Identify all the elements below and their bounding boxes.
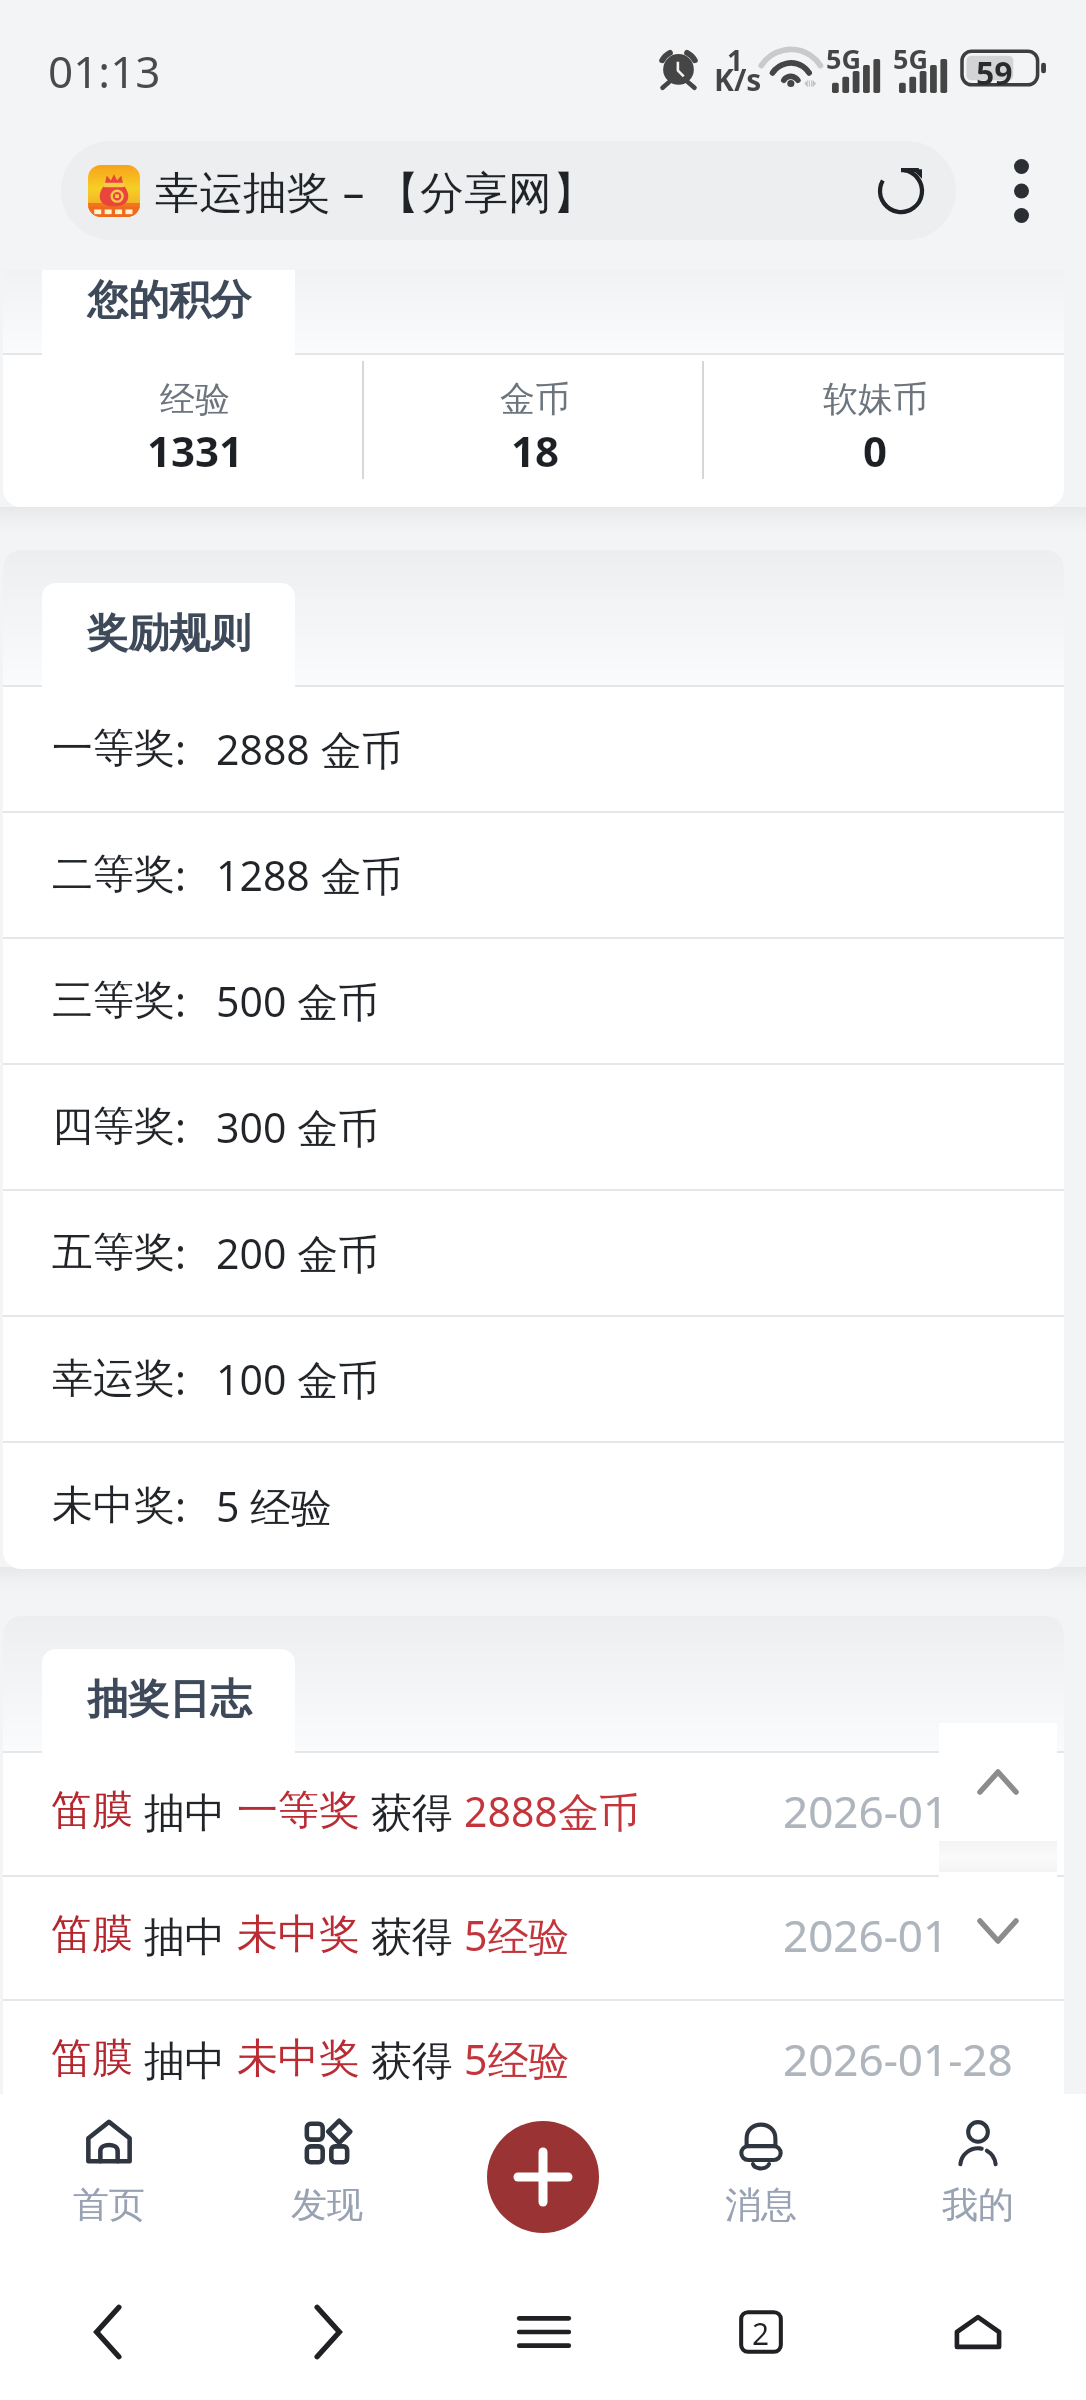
- staticText: 1288 金币: [216, 847, 403, 903]
- staticText: 获得: [360, 1907, 464, 1963]
- button[interactable]: Scroll down: [939, 1872, 1057, 1990]
- staticText: :: [175, 1478, 186, 1534]
- staticText: 一等奖: [237, 1785, 360, 1837]
- staticText: 我的: [942, 2182, 1014, 2227]
- staticText: 5 经验: [216, 1478, 333, 1534]
- staticText: 奖励规则: [87, 608, 251, 660]
- staticText: 59: [976, 51, 1013, 95]
- staticText: 5经验: [464, 2031, 570, 2087]
- staticText: 四等奖: [52, 1101, 175, 1153]
- staticText: 三等奖: [52, 975, 175, 1027]
- button[interactable]: Reload: [851, 141, 950, 240]
- button[interactable]: Home: [869, 2264, 1086, 2400]
- staticText: 一等奖: [52, 723, 175, 775]
- staticText: 幸运奖: [52, 1353, 175, 1405]
- staticText: 2888 金币: [216, 721, 403, 777]
- staticText: 未中奖: [237, 2033, 360, 2085]
- staticText: 获得: [360, 2031, 464, 2087]
- staticText: 软妹币: [823, 377, 928, 421]
- button[interactable]: 笛膜: [3, 1877, 1064, 1999]
- staticText: 5G: [826, 40, 861, 77]
- staticText: 2026-01-28: [783, 2029, 1013, 2089]
- staticText: 500 金币: [216, 973, 380, 1029]
- button[interactable]: 四等奖: [3, 1065, 1064, 1189]
- button[interactable]: 首页: [0, 2094, 218, 2264]
- button[interactable]: 未中奖: [3, 1443, 1064, 1569]
- staticText: 5经验: [464, 1907, 570, 1963]
- button[interactable]: 一等奖: [3, 687, 1064, 811]
- staticText: 300 金币: [216, 1099, 380, 1155]
- staticText: 1: [727, 41, 744, 79]
- button[interactable]: 经验: [25, 355, 365, 507]
- staticText: 首页: [73, 2182, 145, 2227]
- staticText: :: [175, 1099, 186, 1155]
- button[interactable]: 二等奖: [3, 813, 1064, 937]
- button[interactable]: 三等奖: [3, 939, 1064, 1063]
- button[interactable]: 金币: [365, 355, 705, 507]
- staticText: 0: [863, 422, 888, 479]
- staticText: 经验: [160, 377, 230, 421]
- button[interactable]: 消息: [652, 2094, 869, 2264]
- staticText: 100 金币: [216, 1351, 380, 1407]
- button[interactable]: 五等奖: [3, 1191, 1064, 1315]
- button[interactable]: Add: [487, 2121, 599, 2233]
- staticText: 2026-01-28: [783, 1781, 1013, 1841]
- staticText: 2: [752, 2313, 770, 2354]
- staticText: 笛膜: [51, 2033, 133, 2085]
- staticText: 获得: [360, 1783, 464, 1839]
- staticText: 抽中: [133, 2031, 237, 2087]
- staticText: :: [175, 973, 186, 1029]
- button[interactable]: Menu: [435, 2264, 652, 2400]
- button[interactable]: 发现: [218, 2094, 435, 2264]
- button[interactable]: Back: [0, 2264, 218, 2400]
- staticText: 五等奖: [52, 1227, 175, 1279]
- staticText: 二等奖: [52, 849, 175, 901]
- staticText: 幸运抽奖 – 【分享网】: [155, 161, 596, 221]
- staticText: 2026-01-28: [783, 1905, 1013, 1965]
- staticText: 未中奖: [237, 1909, 360, 1961]
- staticText: :: [175, 1351, 186, 1407]
- button[interactable]: 我的: [869, 2094, 1086, 2264]
- staticText: 200 金币: [216, 1225, 380, 1281]
- staticText: 18: [511, 422, 560, 479]
- button[interactable]: 软妹币: [705, 355, 1045, 507]
- staticText: 笛膜: [51, 1785, 133, 1837]
- staticText: K/s: [714, 59, 762, 100]
- button[interactable]: More options: [956, 141, 1086, 240]
- staticText: 2888金币: [464, 1783, 640, 1839]
- staticText: 5G: [893, 40, 928, 77]
- staticText: 发现: [291, 2182, 363, 2227]
- button[interactable]: 笛膜: [3, 2001, 1064, 2123]
- staticText: :: [175, 847, 186, 903]
- button[interactable]: 笛膜: [3, 1753, 1064, 1875]
- button[interactable]: 幸运奖: [3, 1317, 1064, 1441]
- button[interactable]: Scroll up: [939, 1723, 1057, 1841]
- staticText: 01:13: [48, 41, 161, 101]
- staticText: 消息: [725, 2182, 797, 2227]
- staticText: 金币: [500, 377, 570, 421]
- staticText: 抽中: [133, 1907, 237, 1963]
- button[interactable]: Forward: [218, 2264, 435, 2400]
- staticText: :: [175, 721, 186, 777]
- staticText: 抽奖日志: [87, 1674, 251, 1726]
- staticText: :: [175, 1225, 186, 1281]
- staticText: 您的积分: [87, 275, 251, 327]
- button[interactable]: 幸运抽奖 – 【分享网】: [61, 141, 956, 240]
- staticText: 1331: [147, 422, 244, 479]
- staticText: 笛膜: [51, 1909, 133, 1961]
- staticText: 未中奖: [52, 1480, 175, 1532]
- staticText: 抽中: [133, 1783, 237, 1839]
- button[interactable]: Tabs: [652, 2264, 869, 2400]
